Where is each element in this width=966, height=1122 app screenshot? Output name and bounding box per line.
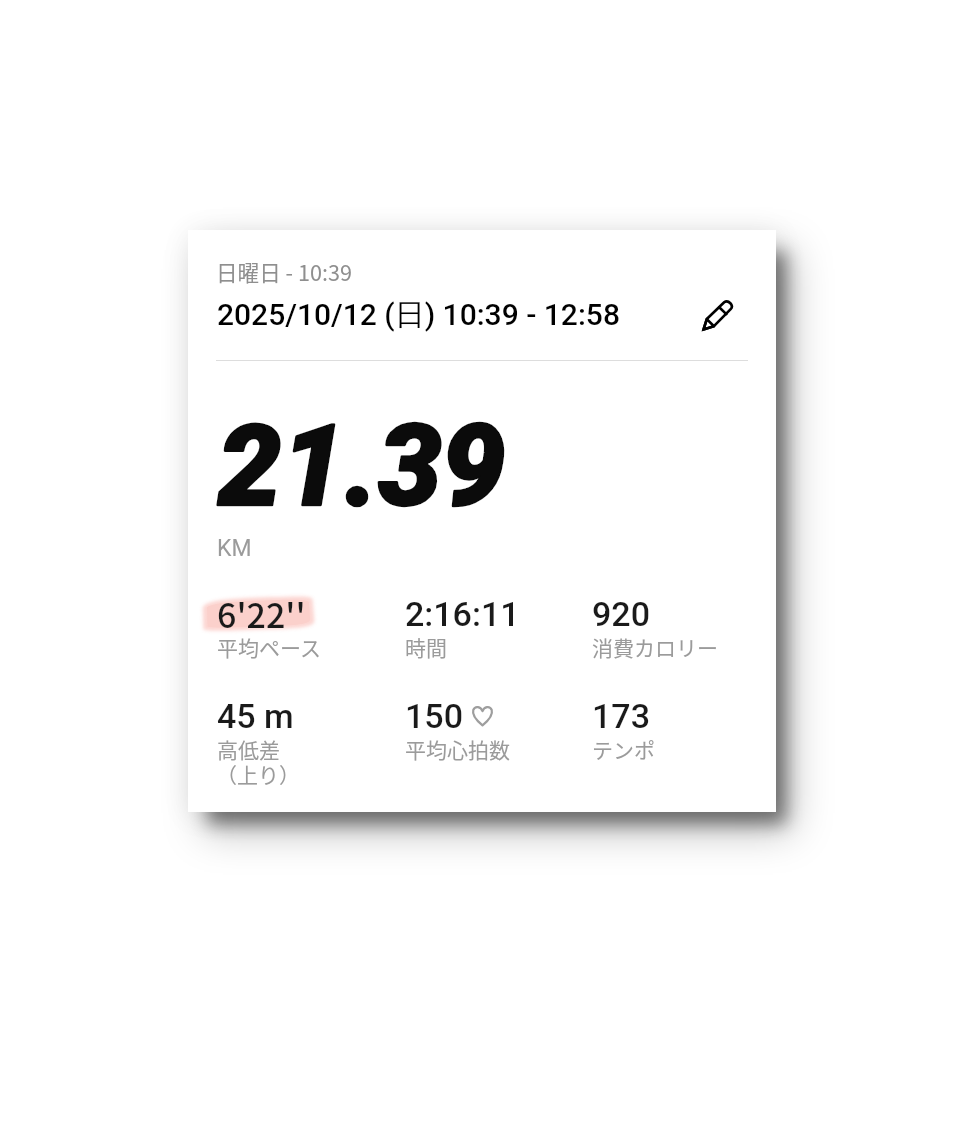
button[interactable]: 日曜日 - 10:39	[206, 248, 678, 338]
staticText: （上り）	[216, 759, 300, 789]
staticText: 173	[592, 696, 650, 736]
staticText: 6'22''	[217, 589, 306, 638]
staticText: 平均ペース	[217, 632, 321, 662]
staticText: 45 m	[217, 696, 294, 736]
staticText: 2025/10/12 (日) 10:39 - 12:58	[217, 296, 620, 334]
staticText: 2:16:11	[405, 594, 520, 634]
staticText: 高低差	[217, 734, 280, 764]
button[interactable]: 920	[582, 590, 758, 662]
button[interactable]: Edit	[702, 300, 733, 331]
button[interactable]: 2:16:11	[395, 590, 571, 662]
staticText: 時間	[405, 632, 447, 662]
staticText: 消費カロリー	[592, 632, 718, 662]
staticText: 21.39	[218, 400, 506, 532]
staticText: テンポ	[592, 734, 655, 764]
staticText: 150	[405, 696, 463, 736]
button[interactable]: 6'22''	[207, 590, 383, 662]
staticText: 920	[592, 594, 650, 634]
button[interactable]: 45 m	[207, 692, 383, 788]
staticText: 平均心拍数	[405, 734, 510, 764]
staticText: 21.39	[218, 400, 506, 532]
staticText: KM	[217, 535, 252, 562]
button[interactable]: 150	[395, 692, 571, 764]
staticText: 日曜日 - 10:39	[216, 256, 352, 287]
button[interactable]: 173	[582, 692, 758, 764]
